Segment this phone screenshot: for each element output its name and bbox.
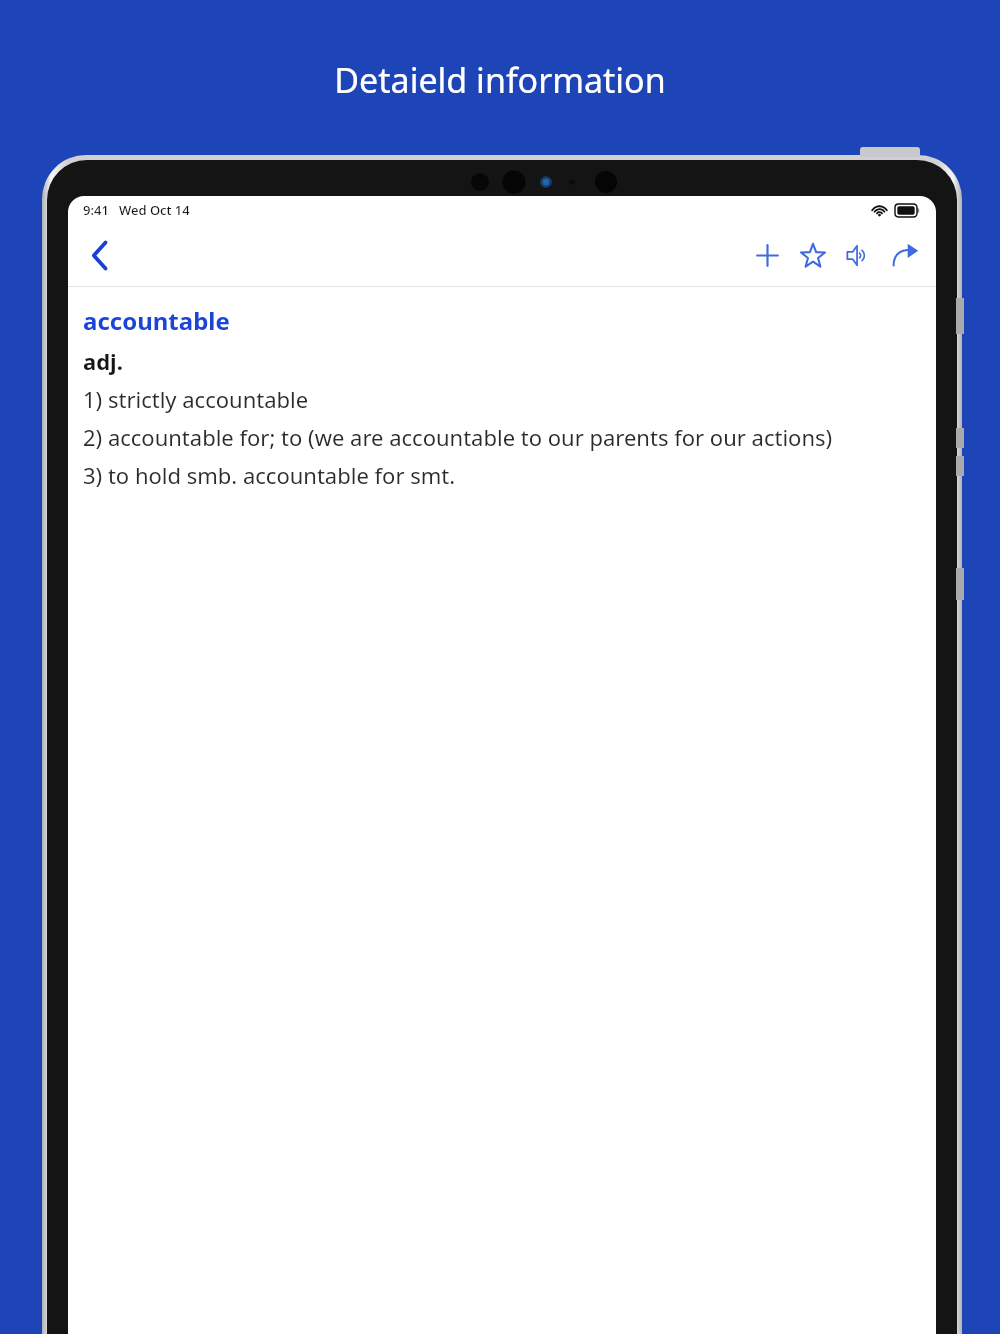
button[interactable]: Back <box>70 226 128 284</box>
staticText: 9:41 <box>83 201 109 219</box>
staticText: Wed Oct 14 <box>119 201 190 219</box>
button[interactable]: Favorite <box>794 232 832 278</box>
staticText: 1) strictly accountable <box>83 384 309 414</box>
staticText: adj. <box>83 346 123 376</box>
button[interactable]: Share <box>886 232 924 278</box>
staticText: 3) to hold smb. accountable for smt. <box>83 460 456 490</box>
button[interactable]: Pronounce <box>840 232 878 278</box>
button[interactable]: accountable <box>83 304 230 337</box>
staticText: 2) accountable for; to (we are accountab… <box>83 422 833 452</box>
button[interactable]: Add to dictionary <box>748 232 786 278</box>
staticText: Detaield information <box>0 57 1000 103</box>
